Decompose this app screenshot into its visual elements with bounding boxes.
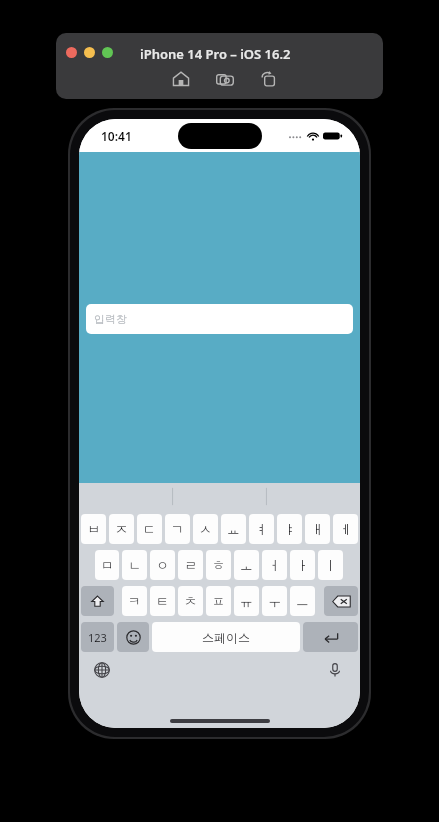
staticText: ㅗ bbox=[240, 557, 253, 573]
button[interactable]: 스페이스 bbox=[152, 622, 300, 652]
button[interactable]: ㅏ bbox=[290, 550, 315, 580]
button[interactable]: Home bbox=[172, 70, 190, 88]
staticText: ㅜ bbox=[268, 593, 281, 609]
button[interactable]: ㅊ bbox=[178, 586, 203, 616]
staticText: 입력창 bbox=[94, 312, 127, 326]
button[interactable]: ㅔ bbox=[333, 514, 358, 544]
button[interactable]: ㄷ bbox=[137, 514, 162, 544]
button[interactable]: 123 bbox=[81, 622, 114, 652]
staticText: ㅔ bbox=[339, 521, 352, 537]
button[interactable]: Backspace bbox=[324, 586, 358, 616]
staticText: ㅁ bbox=[101, 557, 114, 573]
button[interactable]: ㅜ bbox=[262, 586, 287, 616]
staticText: 123 bbox=[88, 630, 107, 645]
staticText: ㅂ bbox=[87, 521, 100, 537]
button[interactable]: ㅠ bbox=[234, 586, 259, 616]
button[interactable]: ㅅ bbox=[193, 514, 218, 544]
staticText: ㅓ bbox=[268, 557, 281, 573]
button[interactable]: Change keyboard language bbox=[91, 659, 113, 681]
button[interactable]: ㅋ bbox=[122, 586, 147, 616]
button[interactable]: 입력창 bbox=[86, 304, 353, 334]
staticText: ㅏ bbox=[296, 557, 309, 573]
button[interactable]: Minimize bbox=[84, 47, 95, 58]
button[interactable]: ㅎ bbox=[206, 550, 231, 580]
button[interactable]: ㅓ bbox=[262, 550, 287, 580]
staticText: ㅈ bbox=[115, 521, 128, 537]
staticText: ㅇ bbox=[156, 557, 169, 573]
staticText: ㅡ bbox=[296, 593, 309, 609]
button[interactable]: ㅍ bbox=[206, 586, 231, 616]
button[interactable]: Screenshot bbox=[216, 70, 234, 88]
button[interactable]: ㅛ bbox=[221, 514, 246, 544]
staticText: ㄷ bbox=[143, 521, 156, 537]
staticText: ㅅ bbox=[199, 521, 212, 537]
button[interactable]: ㅈ bbox=[109, 514, 134, 544]
button[interactable]: ㅗ bbox=[234, 550, 259, 580]
button[interactable]: Maximize bbox=[102, 47, 113, 58]
staticText: ㄹ bbox=[184, 557, 197, 573]
button[interactable]: ㄴ bbox=[122, 550, 147, 580]
staticText: ㅍ bbox=[212, 593, 225, 609]
button[interactable]: Dictation bbox=[324, 659, 346, 681]
staticText: 10:41 bbox=[101, 128, 132, 144]
staticText: ㅐ bbox=[311, 521, 324, 537]
button[interactable]: ㅂ bbox=[81, 514, 106, 544]
button[interactable]: ㅐ bbox=[305, 514, 330, 544]
button[interactable]: Close bbox=[66, 47, 77, 58]
staticText: 스페이스 bbox=[202, 630, 250, 645]
staticText: ㅕ bbox=[255, 521, 268, 537]
button[interactable]: Return bbox=[303, 622, 358, 652]
button[interactable]: ㅑ bbox=[277, 514, 302, 544]
button[interactable]: ㅕ bbox=[249, 514, 274, 544]
staticText: ㅊ bbox=[184, 593, 197, 609]
button[interactable]: Emoji bbox=[117, 622, 149, 652]
staticText: ㅣ bbox=[324, 557, 337, 573]
staticText: ㅠ bbox=[240, 593, 253, 609]
button[interactable]: ㅣ bbox=[318, 550, 343, 580]
staticText: ㅋ bbox=[128, 593, 141, 609]
button[interactable]: ㄹ bbox=[178, 550, 203, 580]
staticText: ㅌ bbox=[156, 593, 169, 609]
button[interactable]: ㅁ bbox=[95, 550, 119, 580]
staticText: ㅎ bbox=[212, 557, 225, 573]
button[interactable]: ㅡ bbox=[290, 586, 315, 616]
staticText: ㅛ bbox=[227, 521, 240, 537]
button[interactable]: ㅇ bbox=[150, 550, 175, 580]
staticText: ㄱ bbox=[171, 521, 184, 537]
staticText: ㅑ bbox=[283, 521, 296, 537]
staticText: iPhone 14 Pro – iOS 16.2 bbox=[140, 45, 291, 63]
button[interactable]: Shift bbox=[81, 586, 114, 616]
button[interactable]: ㄱ bbox=[165, 514, 190, 544]
button[interactable]: Rotate bbox=[260, 70, 278, 88]
button[interactable]: ㅌ bbox=[150, 586, 175, 616]
staticText: ㄴ bbox=[128, 557, 141, 573]
